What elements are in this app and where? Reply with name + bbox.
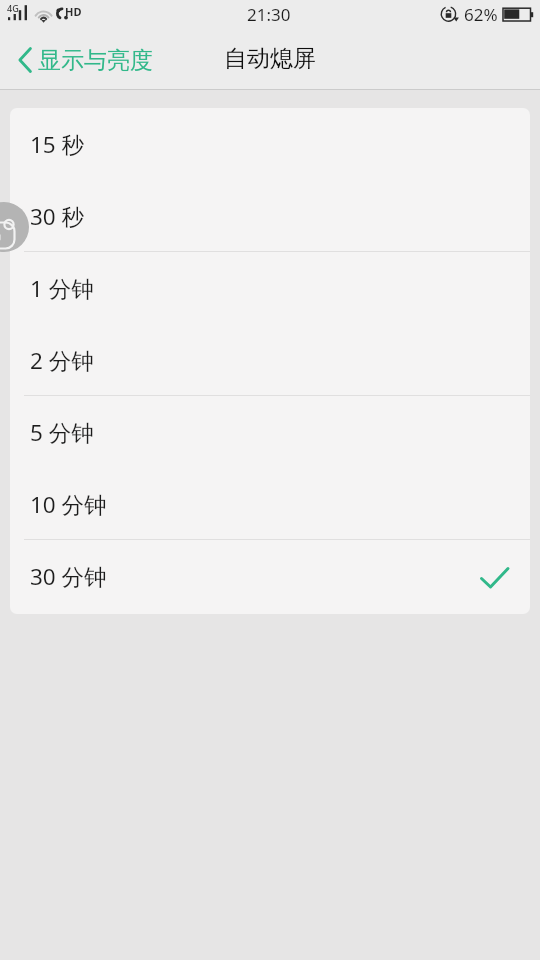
button[interactable]: 10 分钟 <box>10 468 530 540</box>
button[interactable]: 30 秒 <box>10 180 530 252</box>
staticText: 30 秒 <box>30 201 85 232</box>
staticText: 显示与亮度 <box>38 46 153 75</box>
staticText: 62% <box>464 3 498 26</box>
button[interactable]: 30 分钟 <box>10 540 530 612</box>
button[interactable]: 15 秒 <box>10 108 530 180</box>
button[interactable]: Back to 显示与亮度 <box>0 33 169 87</box>
staticText: 2 分钟 <box>30 345 94 376</box>
staticText: 5 分钟 <box>30 417 94 448</box>
staticText: 自动熄屏 <box>224 44 316 73</box>
staticText: 21:30 <box>247 3 291 26</box>
staticText: 4G <box>7 2 19 14</box>
staticText: HD <box>65 4 82 19</box>
staticText: 1 分钟 <box>30 273 94 304</box>
button[interactable]: 5 分钟 <box>10 396 530 468</box>
staticText: 30 分钟 <box>30 561 107 592</box>
button[interactable]: 1 分钟 <box>10 252 530 324</box>
staticText: 15 秒 <box>30 129 85 160</box>
staticText: 10 分钟 <box>30 489 107 520</box>
button[interactable]: Assistant <box>0 202 29 252</box>
button[interactable]: 2 分钟 <box>10 324 530 396</box>
